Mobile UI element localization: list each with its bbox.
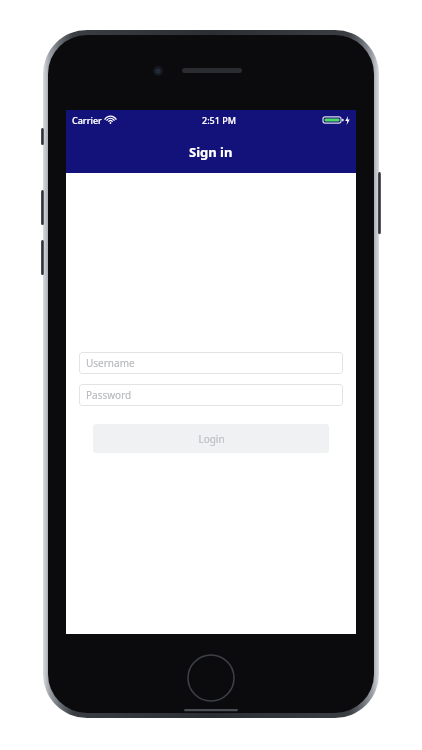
staticText: Sign in [189, 143, 233, 161]
button[interactable]: Home [187, 654, 235, 702]
staticText: Carrier [72, 114, 102, 126]
staticText: 2:51 PM [202, 114, 236, 126]
staticText: Password [86, 388, 132, 402]
staticText: Login [198, 432, 225, 446]
button[interactable]: Login [93, 424, 329, 453]
staticText: Username [86, 356, 135, 370]
button[interactable]: Username [79, 352, 343, 374]
button[interactable]: Password [79, 384, 343, 406]
